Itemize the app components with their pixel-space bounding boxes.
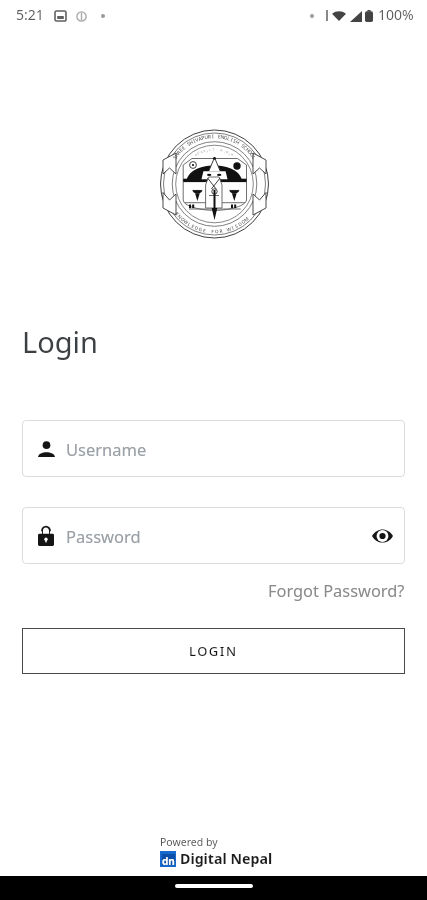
staticText: 100% <box>378 5 414 24</box>
staticText: Powered by <box>160 835 218 849</box>
button[interactable]: Username <box>22 420 405 477</box>
staticText: LOGIN <box>189 642 238 660</box>
staticText: dn <box>162 854 175 865</box>
button[interactable]: Show password <box>366 519 399 552</box>
staticText: Digital Nepal <box>180 849 273 868</box>
staticText: 5:21 <box>16 5 44 24</box>
button[interactable]: Password <box>22 507 405 564</box>
button[interactable]: LOGIN <box>22 628 405 674</box>
staticText: Password <box>66 525 141 547</box>
staticText: Login <box>22 322 98 361</box>
staticText: Username <box>66 438 147 460</box>
button[interactable]: Forgot Password? <box>266 577 407 603</box>
